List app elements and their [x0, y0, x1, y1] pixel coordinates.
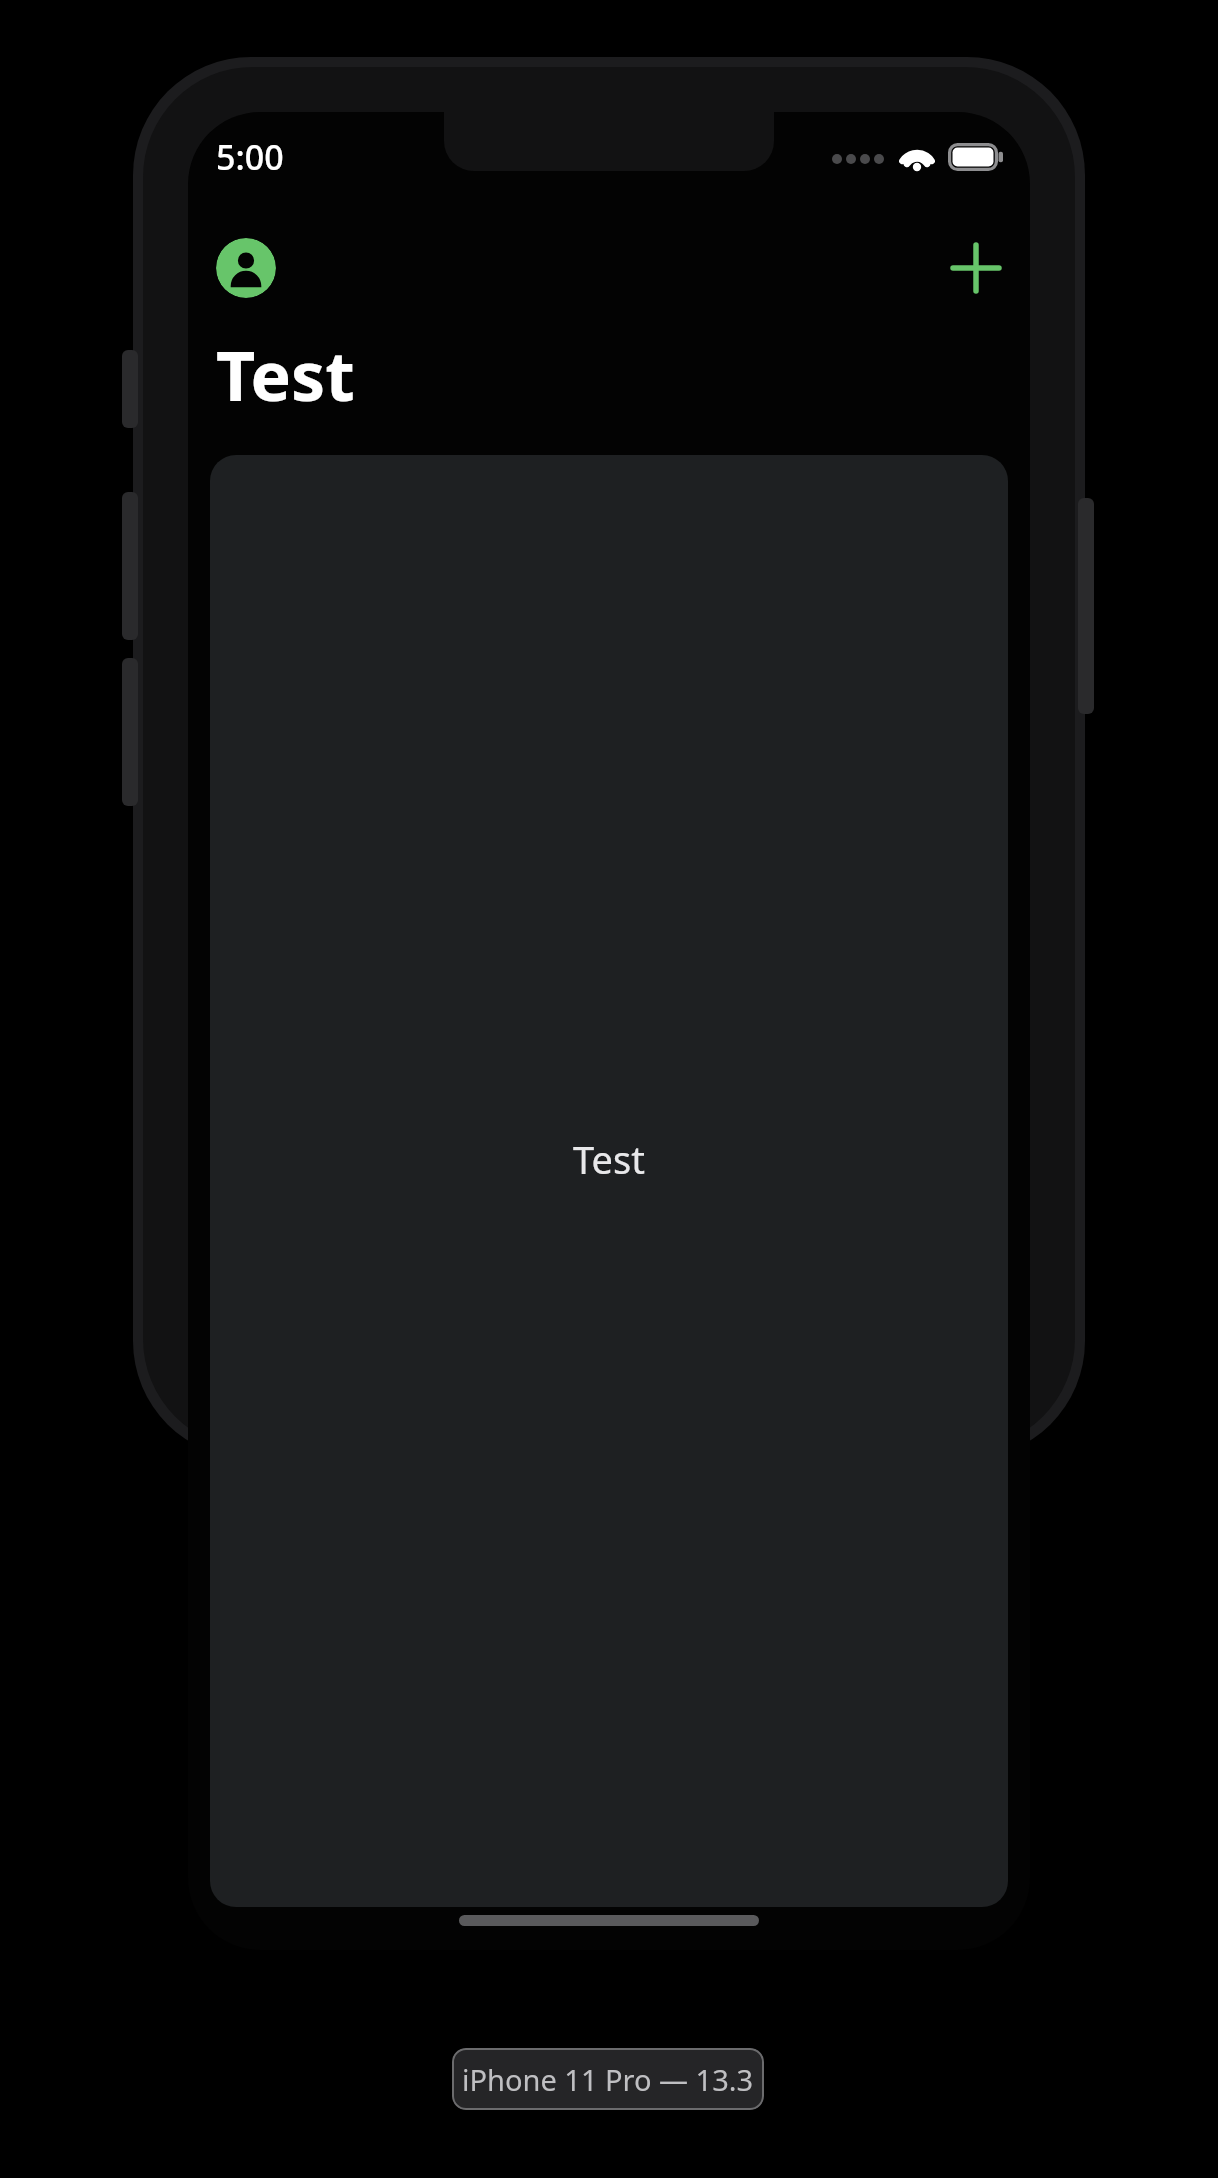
staticText: iPhone 11 Pro — 13.3 — [462, 2060, 754, 2099]
staticText: Test — [573, 1133, 645, 1185]
button[interactable]: Test — [210, 455, 1008, 1907]
staticText: 5:00 — [216, 134, 284, 180]
button[interactable]: Account — [216, 238, 276, 298]
button[interactable]: Add — [944, 236, 1008, 300]
staticText: Test — [216, 328, 355, 421]
